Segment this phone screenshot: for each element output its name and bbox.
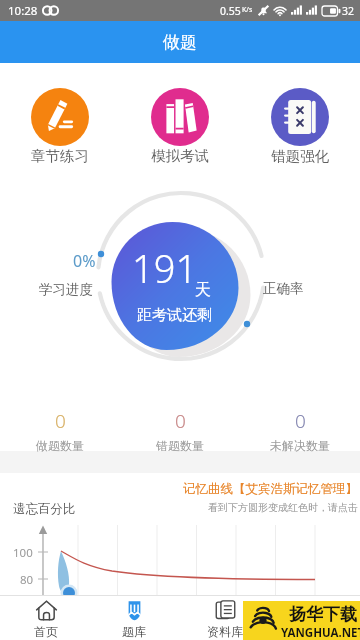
button[interactable]: 0 xyxy=(240,408,360,453)
staticText: 191 xyxy=(132,242,198,294)
staticText: 0% xyxy=(73,250,96,272)
staticText: 10:28 xyxy=(8,3,38,19)
button[interactable]: 资料库 xyxy=(187,595,263,640)
staticText: K/s xyxy=(242,5,253,15)
staticText: 距考试还剩 xyxy=(137,306,212,325)
button[interactable]: 0% xyxy=(24,250,108,298)
button[interactable]: 章节练习 xyxy=(20,88,100,165)
staticText: 扬华下载 xyxy=(289,604,357,625)
staticText: 题库 xyxy=(122,624,146,639)
staticText: 资料库 xyxy=(207,624,243,639)
button[interactable]: 正确率 xyxy=(263,280,304,297)
staticText: 错题数量 xyxy=(156,438,204,453)
staticText: 正确率 xyxy=(263,280,304,297)
staticText: 遗忘百分比 xyxy=(13,501,76,517)
staticText: 32 xyxy=(342,4,355,18)
staticText: 首页 xyxy=(34,624,58,639)
staticText: 未解决数量 xyxy=(270,438,330,453)
staticText: 做题 xyxy=(163,32,197,53)
button[interactable]: 我的 xyxy=(275,595,351,640)
staticText: 看到下方圆形变成红色时，请点击 xyxy=(208,501,358,514)
button[interactable]: 0 xyxy=(0,408,120,453)
staticText: 学习进度 xyxy=(39,281,93,298)
button[interactable]: 0 xyxy=(120,408,240,453)
button[interactable]: 错题强化 xyxy=(260,88,340,165)
staticText: 0 xyxy=(55,408,66,434)
staticText: 0 xyxy=(295,408,306,434)
staticText: 模拟考试 xyxy=(151,147,209,165)
staticText: 0 xyxy=(175,408,186,434)
staticText: 做题数量 xyxy=(36,438,84,453)
button[interactable]: 首页 xyxy=(8,595,84,640)
staticText: 100 xyxy=(13,545,33,561)
button[interactable]: 记忆曲线【艾宾浩斯记忆管理】 xyxy=(183,481,358,514)
staticText: 80 xyxy=(20,572,34,588)
staticText: 天 xyxy=(195,280,211,300)
staticText: 0.55 xyxy=(220,4,241,18)
button[interactable]: 题库 xyxy=(96,595,172,640)
staticText: 我的 xyxy=(301,624,325,639)
staticText: YANGHUA.NET xyxy=(281,625,360,640)
button[interactable]: 模拟考试 xyxy=(140,88,220,165)
staticText: 章节练习 xyxy=(31,147,89,165)
staticText: 记忆曲线【艾宾浩斯记忆管理】 xyxy=(183,481,358,497)
staticText: 错题强化 xyxy=(271,147,329,165)
